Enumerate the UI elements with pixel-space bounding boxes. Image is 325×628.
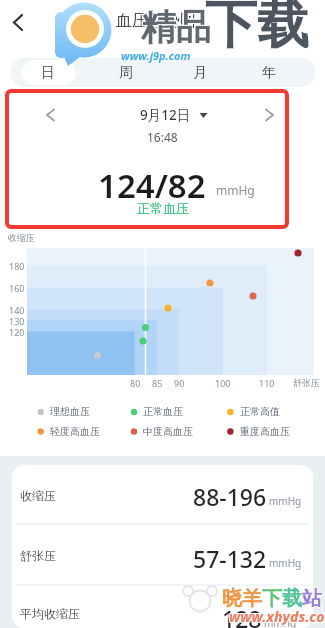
- staticText: 舒张压: [20, 548, 56, 563]
- staticText: 精品: [140, 6, 210, 50]
- staticText: 周: [119, 64, 133, 82]
- staticText: 晓羊下载站: [222, 587, 322, 612]
- staticText: 85: [152, 377, 163, 389]
- staticText: 平均收缩压: [20, 606, 80, 621]
- staticText: www.xhyds.com: [228, 606, 325, 625]
- button[interactable]: [8, 10, 34, 36]
- staticText: 90: [174, 377, 185, 389]
- staticText: 月: [193, 64, 207, 82]
- staticText: 收缩压: [8, 232, 35, 243]
- staticText: 日: [41, 64, 55, 82]
- staticText: 下载: [205, 0, 309, 57]
- staticText: 57-132: [193, 543, 267, 574]
- staticText: www.xhyds.com: [229, 607, 325, 626]
- staticText: 精品: [141, 4, 211, 48]
- staticText: 血压趋势图: [116, 11, 196, 31]
- staticText: 正常血压: [137, 200, 189, 216]
- staticText: www.xhyds.com: [229, 606, 325, 625]
- staticText: www.xhyds.com: [230, 606, 325, 625]
- staticText: 88-196: [193, 481, 267, 512]
- staticText: mmHg: [269, 556, 302, 570]
- button[interactable]: [22, 60, 76, 85]
- staticText: 80: [130, 377, 141, 389]
- staticText: 正常高值: [240, 405, 280, 418]
- staticText: 中度高血压: [143, 425, 193, 438]
- button[interactable]: 日: [28, 58, 68, 87]
- staticText: 120: [9, 326, 25, 338]
- staticText: 下载: [204, 0, 308, 58]
- staticText: 正常血压: [143, 405, 183, 418]
- button[interactable]: 月: [180, 58, 220, 87]
- button[interactable]: [40, 104, 62, 126]
- staticText: 下载: [206, 0, 310, 59]
- staticText: 下载: [206, 0, 310, 57]
- staticText: 140: [9, 304, 25, 316]
- staticText: 精品: [141, 6, 211, 50]
- staticText: 160: [9, 282, 25, 294]
- staticText: 精品: [142, 4, 212, 48]
- staticText: 精品: [142, 5, 212, 49]
- staticText: 重度高血压: [240, 425, 290, 438]
- staticText: 收缩压: [20, 488, 56, 503]
- staticText: 128: [222, 603, 262, 628]
- button[interactable]: 9月12日: [120, 105, 210, 125]
- staticText: 180: [9, 260, 25, 272]
- staticText: 晓羊下载站: [223, 586, 323, 611]
- staticText: 晓羊下载站: [221, 586, 321, 611]
- staticText: www.xhyds.com: [229, 608, 325, 627]
- staticText: 124/82: [98, 163, 206, 208]
- staticText: 下载: [206, 0, 310, 58]
- staticText: 下载: [204, 0, 308, 59]
- staticText: mmHg: [216, 182, 255, 198]
- staticText: 理想血压: [50, 405, 90, 418]
- staticText: www.xhyds.com: [228, 607, 325, 626]
- staticText: 轻度高血压: [50, 425, 100, 438]
- staticText: 100: [215, 377, 231, 389]
- staticText: 9月12日: [140, 106, 191, 124]
- staticText: 精品: [141, 5, 211, 49]
- staticText: www.xhyds.com: [230, 608, 325, 627]
- staticText: 精品: [140, 5, 210, 49]
- staticText: www.j9p.com: [121, 48, 191, 63]
- staticText: 舒张压: [293, 377, 320, 388]
- button[interactable]: 年: [249, 58, 289, 87]
- staticText: www.xhyds.com: [228, 608, 325, 627]
- button[interactable]: [258, 104, 280, 126]
- staticText: 年: [262, 64, 276, 82]
- staticText: 下载: [204, 0, 308, 57]
- staticText: 下载: [205, 0, 309, 58]
- staticText: mmHg: [264, 616, 297, 628]
- staticText: mmHg: [269, 494, 302, 508]
- staticText: 精品: [142, 6, 212, 50]
- button[interactable]: 周: [106, 58, 146, 87]
- staticText: 晓羊下载站: [222, 586, 322, 611]
- staticText: www.xhyds.com: [230, 607, 325, 626]
- staticText: 130: [9, 315, 25, 327]
- staticText: 16:48: [147, 129, 178, 145]
- staticText: 晓羊下载站: [222, 585, 322, 610]
- staticText: 精品: [140, 4, 210, 48]
- staticText: 下载: [205, 0, 309, 59]
- staticText: 110: [259, 377, 275, 389]
